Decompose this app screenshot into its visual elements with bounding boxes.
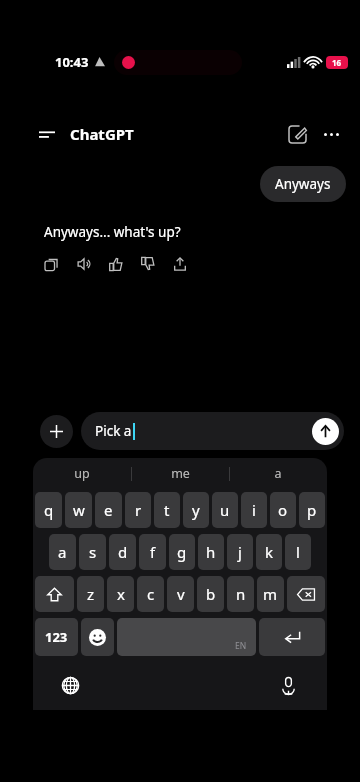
button[interactable]: t xyxy=(154,492,180,528)
button[interactable]: c xyxy=(137,576,164,612)
staticText: n xyxy=(236,584,246,604)
button[interactable]: Read aloud xyxy=(73,253,95,275)
button[interactable]: f xyxy=(139,534,166,570)
button[interactable]: r xyxy=(125,492,151,528)
button[interactable]: me xyxy=(131,458,229,489)
staticText: v xyxy=(177,584,185,604)
button[interactable]: v xyxy=(167,576,194,612)
staticText: p xyxy=(307,500,317,520)
staticText: t xyxy=(164,500,170,520)
staticText: k xyxy=(265,542,274,562)
button[interactable]: i xyxy=(241,492,267,528)
button[interactable]: 123 xyxy=(35,618,78,656)
button[interactable]: e xyxy=(95,492,122,528)
staticText: a xyxy=(274,465,282,482)
staticText: Anyways... what's up? xyxy=(44,223,181,241)
button[interactable]: More options xyxy=(314,117,348,151)
staticText: a xyxy=(58,542,67,562)
staticText: s xyxy=(89,542,97,562)
staticText: j xyxy=(238,542,242,562)
button[interactable]: y xyxy=(183,492,209,528)
staticText: q xyxy=(44,500,54,520)
button[interactable]: Backspace xyxy=(287,576,325,612)
button[interactable]: Shift xyxy=(35,576,74,612)
button[interactable]: h xyxy=(198,534,224,570)
staticText: l xyxy=(296,542,300,562)
button[interactable]: a xyxy=(229,458,327,489)
button[interactable]: m xyxy=(257,576,284,612)
button[interactable]: a xyxy=(49,534,76,570)
button[interactable]: New chat xyxy=(280,117,314,151)
button[interactable]: Send xyxy=(312,418,339,445)
button[interactable]: u xyxy=(212,492,238,528)
staticText: u xyxy=(220,500,230,520)
button[interactable]: Enter xyxy=(259,618,325,656)
button[interactable]: Good response xyxy=(105,253,127,275)
button[interactable]: x xyxy=(107,576,134,612)
staticText: c xyxy=(147,584,155,604)
staticText: Pick a xyxy=(95,422,132,440)
button[interactable]: z xyxy=(77,576,104,612)
staticText: b xyxy=(206,584,216,604)
button[interactable]: q xyxy=(35,492,62,528)
staticText: x xyxy=(117,584,125,604)
staticText: y xyxy=(192,500,200,520)
button[interactable]: Space xyxy=(117,618,256,656)
button[interactable]: Bad response xyxy=(137,253,159,275)
button[interactable]: n xyxy=(227,576,254,612)
button[interactable]: Voice input xyxy=(273,670,303,700)
button[interactable]: s xyxy=(79,534,106,570)
staticText: EN xyxy=(235,640,247,652)
button[interactable]: w xyxy=(65,492,92,528)
button[interactable]: Anyways xyxy=(260,166,346,202)
button[interactable]: k xyxy=(256,534,282,570)
staticText: z xyxy=(87,584,95,604)
button[interactable]: d xyxy=(109,534,136,570)
staticText: r xyxy=(135,500,142,520)
button[interactable]: Copy xyxy=(41,253,63,275)
staticText: ChatGPT xyxy=(70,124,134,144)
staticText: 16 xyxy=(332,57,342,68)
staticText: 123 xyxy=(45,628,68,646)
staticText: o xyxy=(278,500,288,520)
button[interactable]: Menu xyxy=(32,119,62,149)
staticText: h xyxy=(206,542,216,562)
staticText: w xyxy=(73,500,85,520)
button[interactable]: Emoji xyxy=(81,618,114,656)
button[interactable]: b xyxy=(197,576,224,612)
staticText: 10:43 xyxy=(55,53,89,71)
staticText: e xyxy=(104,500,113,520)
button[interactable]: Share xyxy=(169,253,191,275)
staticText: me xyxy=(171,465,190,482)
button[interactable]: Add attachment xyxy=(40,415,73,448)
staticText: f xyxy=(150,542,156,562)
button[interactable]: Pick a xyxy=(81,412,344,450)
button[interactable]: g xyxy=(169,534,195,570)
staticText: g xyxy=(177,542,187,562)
staticText: i xyxy=(252,500,256,520)
button[interactable]: p xyxy=(299,492,325,528)
button[interactable]: up xyxy=(33,458,131,489)
button[interactable]: j xyxy=(227,534,253,570)
staticText: m xyxy=(263,584,278,604)
button[interactable]: l xyxy=(285,534,311,570)
button[interactable]: o xyxy=(270,492,296,528)
staticText: d xyxy=(118,542,128,562)
staticText: up xyxy=(74,465,90,482)
button[interactable]: Change language xyxy=(55,670,85,700)
button[interactable]: ChatGPT xyxy=(70,124,134,144)
staticText: Anyways xyxy=(275,175,331,193)
